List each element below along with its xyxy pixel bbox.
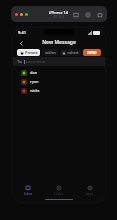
staticText: iPhone 14 [49, 10, 69, 15]
staticText: ryan [30, 79, 39, 84]
button[interactable]: Settings [84, 11, 91, 18]
staticText: nicks [30, 88, 40, 93]
button[interactable]: Back [17, 39, 25, 47]
button[interactable]: nicks [13, 86, 105, 95]
staticText: SEND [87, 50, 97, 55]
staticText: 9:41 [18, 30, 26, 35]
staticText: Private [25, 50, 38, 55]
staticText: within [45, 50, 56, 55]
staticText: username [26, 59, 46, 64]
button[interactable]: within [42, 49, 58, 56]
button[interactable]: Screenshot [96, 11, 103, 18]
button[interactable]: dan [13, 68, 105, 77]
staticText: dan [30, 70, 38, 75]
staticText: To: [17, 59, 23, 64]
staticText: New Message [42, 39, 76, 46]
button[interactable]: ryan [13, 77, 105, 86]
staticText: Circles [54, 192, 64, 196]
button[interactable]: Apps [74, 183, 105, 197]
button[interactable]: cohort [60, 49, 81, 56]
button[interactable]: Circles [43, 183, 74, 197]
staticText: iOS 16.2 [53, 15, 65, 19]
button[interactable]: SEND [83, 49, 101, 56]
button[interactable]: Inbox [13, 183, 43, 197]
staticText: cohort [67, 50, 79, 55]
button[interactable]: Private [17, 49, 40, 56]
button[interactable]: Home [72, 11, 79, 18]
staticText: Inbox [24, 192, 33, 196]
staticText: Apps [86, 192, 94, 196]
button[interactable]: To: [13, 57, 105, 66]
